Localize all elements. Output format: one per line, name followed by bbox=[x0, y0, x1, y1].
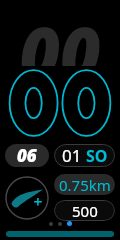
staticText: 06 bbox=[17, 144, 37, 167]
button[interactable]: Nike Plus Run bbox=[5, 176, 49, 220]
staticText: 500 bbox=[72, 201, 98, 221]
button[interactable]: Progress bbox=[6, 231, 114, 237]
button[interactable]: 500 bbox=[54, 200, 115, 221]
staticText: 00 bbox=[19, 4, 101, 66]
button[interactable]: 0.75km bbox=[54, 174, 115, 195]
button[interactable]: 01 bbox=[54, 144, 115, 167]
button[interactable]: 06 bbox=[5, 144, 49, 167]
staticText: 0.75km bbox=[59, 175, 111, 195]
staticText: SO bbox=[86, 145, 108, 167]
staticText: 01 bbox=[62, 144, 82, 167]
